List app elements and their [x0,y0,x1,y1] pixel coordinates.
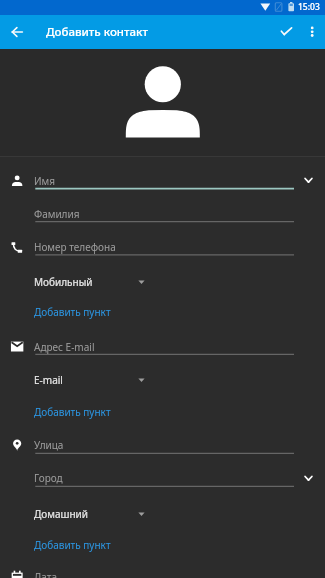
button[interactable]: Фамилия [0,191,325,224]
staticText: Номер телефона [34,240,116,254]
button[interactable]: Номер телефона [0,224,325,257]
button[interactable]: Мобильный [0,267,325,297]
staticText: Фамилия [34,207,80,221]
button[interactable]: Дата [0,554,325,578]
button[interactable]: Город [0,455,325,488]
button[interactable]: Back [0,16,33,49]
staticText: Добавить пункт [34,405,111,419]
button[interactable]: Expand [295,465,321,491]
staticText: Адрес E-mail [34,340,95,354]
button[interactable]: Адрес E-mail [0,323,325,356]
button[interactable]: More options [302,15,325,49]
button[interactable]: Добавить пункт [0,530,325,560]
staticText: Домашний [34,507,88,521]
staticText: E-mail [34,373,63,387]
staticText: Добавить контакт [46,24,148,40]
staticText: Город [34,471,63,485]
staticText: 15:03 [298,1,320,13]
button[interactable]: Улица [0,422,325,455]
button[interactable]: Expand [295,167,321,193]
staticText: Добавить пункт [34,538,111,552]
staticText: Добавить пункт [34,305,111,319]
staticText: Имя [34,174,56,188]
staticText: Дата [34,570,57,578]
button[interactable]: Имя [0,158,325,191]
button[interactable]: Добавить пункт [0,397,325,427]
button[interactable]: Добавить пункт [0,297,325,327]
button[interactable]: E-mail [0,365,325,395]
staticText: Улица [34,438,64,452]
button[interactable]: Save contact [272,15,302,49]
button[interactable]: Домашний [0,499,325,529]
staticText: Мобильный [34,275,93,289]
